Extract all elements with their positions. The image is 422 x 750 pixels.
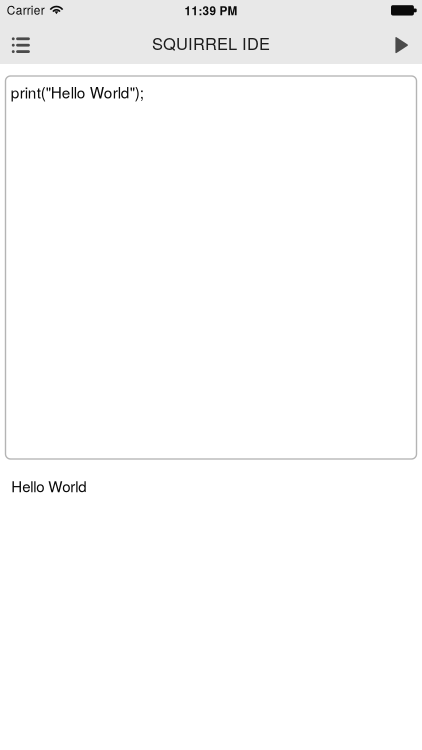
staticText: Hello World	[11, 475, 86, 497]
staticText: 11:39 PM	[184, 2, 237, 19]
button[interactable]: Scripts	[0, 20, 44, 64]
button[interactable]: Run	[378, 20, 422, 64]
staticText: Carrier	[7, 1, 45, 18]
staticText: SQUIRREL IDE	[152, 31, 270, 55]
staticText: print("Hello World");	[11, 81, 144, 103]
